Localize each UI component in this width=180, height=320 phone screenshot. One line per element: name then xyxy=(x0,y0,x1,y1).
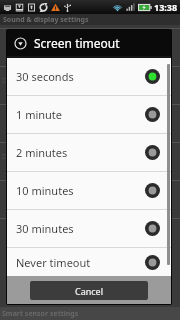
button[interactable]: Cancel xyxy=(30,281,148,300)
staticText: 2 minutes xyxy=(16,145,145,160)
staticText: 30 minutes xyxy=(16,221,145,236)
staticText: 1 minute xyxy=(16,107,145,122)
button[interactable]: Never timeout xyxy=(7,248,171,276)
staticText: D xyxy=(2,76,8,86)
button[interactable]: 1 minute xyxy=(7,96,171,133)
button[interactable]: 30 seconds xyxy=(7,58,171,95)
staticText: Cancel xyxy=(75,285,104,297)
staticText: 10 minutes xyxy=(16,183,145,198)
staticText: 13:38 xyxy=(154,1,178,13)
button[interactable]: 10 minutes xyxy=(7,172,171,209)
staticText: Sound & display settings xyxy=(3,15,89,25)
staticText: Smart sensor settings xyxy=(2,309,79,319)
button[interactable]: 30 minutes xyxy=(7,210,171,247)
staticText: 30 seconds xyxy=(16,69,145,84)
staticText: Screen timeout xyxy=(34,35,120,51)
staticText: Never timeout xyxy=(16,255,145,270)
button[interactable]: 2 minutes xyxy=(7,134,171,171)
staticText: D xyxy=(2,152,8,162)
